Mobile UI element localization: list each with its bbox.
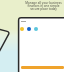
button[interactable]: Continue xyxy=(21,66,64,69)
button[interactable]: Wallet xyxy=(20,27,24,31)
staticText: Manage all your business finances in one… xyxy=(24,1,63,11)
button[interactable]: Manage all your business finances in one… xyxy=(24,1,63,11)
button[interactable]: Transfers xyxy=(34,27,38,31)
button[interactable]: Cards xyxy=(27,27,31,31)
